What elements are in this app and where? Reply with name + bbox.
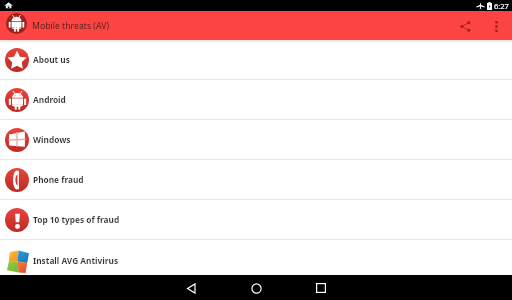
staticText: Windows (33, 134, 71, 145)
button[interactable]: Phone fraud (0, 160, 512, 199)
button[interactable]: Home (244, 276, 268, 300)
button[interactable]: Recent apps (309, 276, 333, 300)
staticText: Mobile threats (AV) (32, 20, 109, 32)
staticText: Top 10 types of fraud (33, 214, 120, 225)
button[interactable]: Android (0, 80, 512, 119)
button[interactable]: Install AVG Antivirus (0, 240, 512, 280)
button[interactable]: About us (0, 40, 512, 79)
button[interactable]: More options (485, 15, 507, 37)
staticText: Phone fraud (33, 174, 84, 185)
button[interactable]: Windows (0, 120, 512, 159)
button[interactable]: Top 10 types of fraud (0, 200, 512, 239)
button[interactable]: Back (179, 276, 203, 300)
staticText: About us (33, 54, 70, 65)
staticText: 6:27 (494, 1, 509, 11)
button[interactable]: Share (451, 12, 479, 40)
staticText: Android (33, 94, 66, 105)
staticText: Install AVG Antivirus (33, 255, 119, 266)
